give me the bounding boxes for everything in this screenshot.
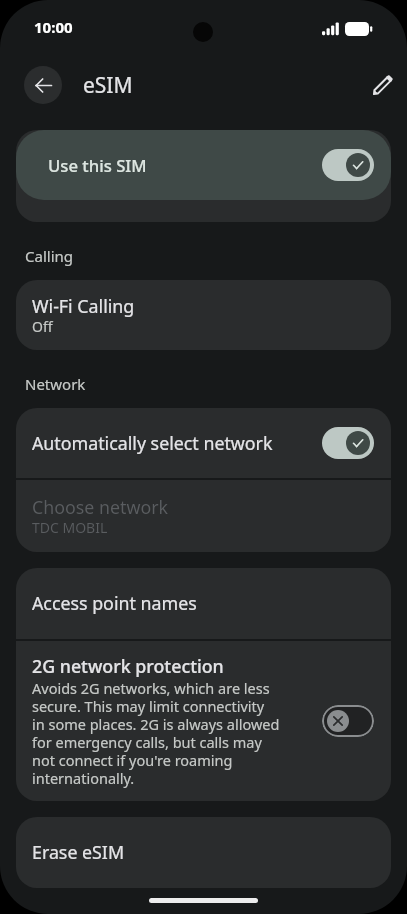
- staticText: Erase eSIM: [32, 841, 125, 864]
- button[interactable]: Edit: [361, 63, 405, 107]
- staticText: Network: [25, 375, 86, 394]
- staticText: eSIM: [83, 72, 133, 99]
- staticText: Automatically select network: [32, 432, 322, 455]
- button[interactable]: 2G network protection: [16, 641, 391, 801]
- staticText: Access point names: [32, 592, 197, 615]
- staticText: Off: [32, 318, 53, 336]
- staticText: TDC MOBIL: [32, 519, 108, 537]
- staticText: Calling: [25, 247, 74, 266]
- button[interactable]: Wi-Fi Calling: [16, 280, 391, 350]
- staticText: 10:00: [34, 18, 73, 37]
- staticText: Use this SIM: [48, 155, 322, 176]
- staticText: Choose network: [32, 496, 169, 519]
- button[interactable]: Use this SIM: [16, 130, 391, 200]
- button[interactable]: Access point names: [16, 568, 391, 639]
- staticText: Wi-Fi Calling: [32, 295, 135, 318]
- button[interactable]: Back: [24, 66, 62, 104]
- button[interactable]: Automatically select network: [16, 408, 391, 478]
- staticText: 2G network protection: [32, 655, 224, 678]
- button[interactable]: Erase eSIM: [16, 817, 391, 888]
- staticText: Avoids 2G networks, which are less secur…: [32, 680, 280, 788]
